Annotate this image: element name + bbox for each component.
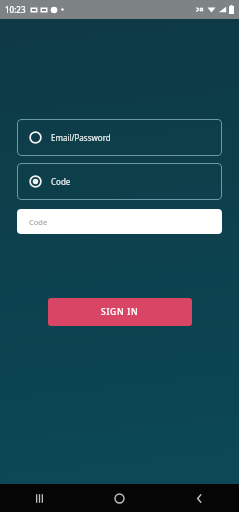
button[interactable]: Code [17,163,222,200]
button[interactable]: Home [79,484,159,512]
staticText: Email/Password [51,132,111,143]
staticText: Code [29,217,48,227]
button[interactable]: Email/Password [17,119,222,156]
staticText: SIGN IN [101,306,139,318]
button[interactable]: Back [159,484,239,512]
button[interactable]: Recent apps [0,484,79,512]
button[interactable]: Code [17,209,222,234]
button[interactable]: SIGN IN [48,298,192,326]
staticText: Code [51,176,71,187]
staticText: 10:23 [5,4,26,15]
